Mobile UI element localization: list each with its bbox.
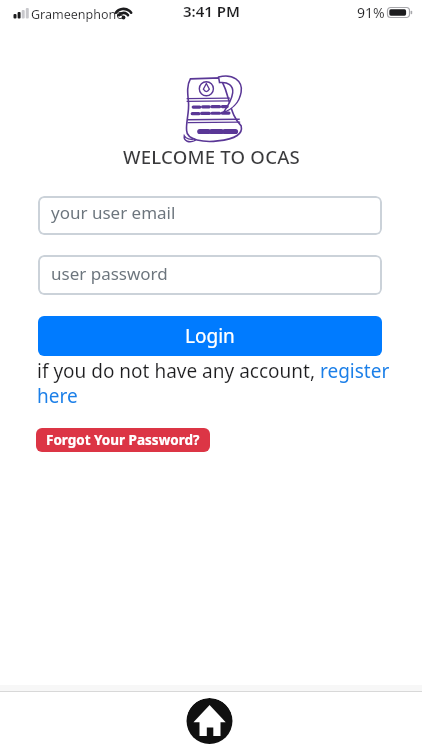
staticText: if you do not have any account, <box>37 358 320 384</box>
button[interactable]: your user email <box>38 196 382 235</box>
staticText: 3:41 PM <box>183 1 240 21</box>
staticText: 91% <box>357 3 385 22</box>
staticText: Forgot Your Password? <box>46 431 200 449</box>
button[interactable]: Forgot Your Password? <box>36 428 210 452</box>
button[interactable]: user password <box>38 255 382 295</box>
staticText: Login <box>185 323 235 349</box>
staticText: user password <box>51 262 168 285</box>
staticText: your user email <box>51 201 176 224</box>
staticText: WELCOME TO OCAS <box>123 144 300 169</box>
button[interactable]: here <box>37 383 78 409</box>
button[interactable]: Login <box>38 316 382 356</box>
button[interactable]: register <box>320 358 390 384</box>
staticText: Grameenphone <box>31 6 124 23</box>
button[interactable] <box>186 698 233 745</box>
